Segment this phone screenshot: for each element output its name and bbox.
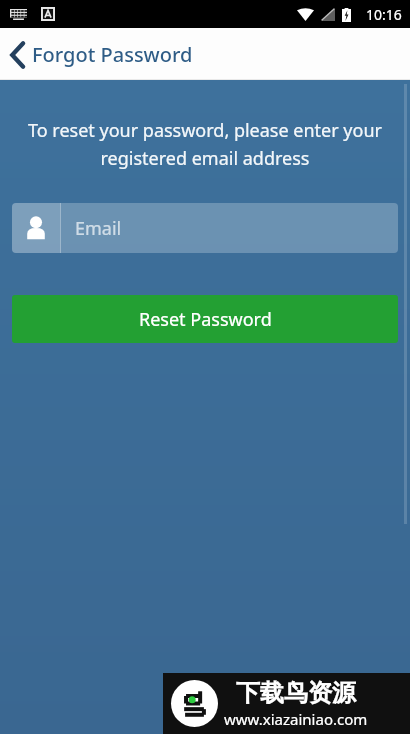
other: Back (10, 42, 26, 68)
staticText: 10:16 (366, 5, 402, 24)
button[interactable]: Back (8, 37, 195, 72)
staticText: 下载鸟资源 (236, 678, 356, 708)
staticText: Email (75, 216, 122, 241)
staticText: To reset your password, please enter you… (6, 118, 404, 170)
staticText: Reset Password (139, 307, 272, 332)
staticText: Forgot Password (32, 41, 193, 68)
button[interactable]: Reset Password (12, 295, 398, 343)
staticText: www.xiazainiao.com (224, 709, 368, 729)
button[interactable]: Email (12, 203, 398, 253)
